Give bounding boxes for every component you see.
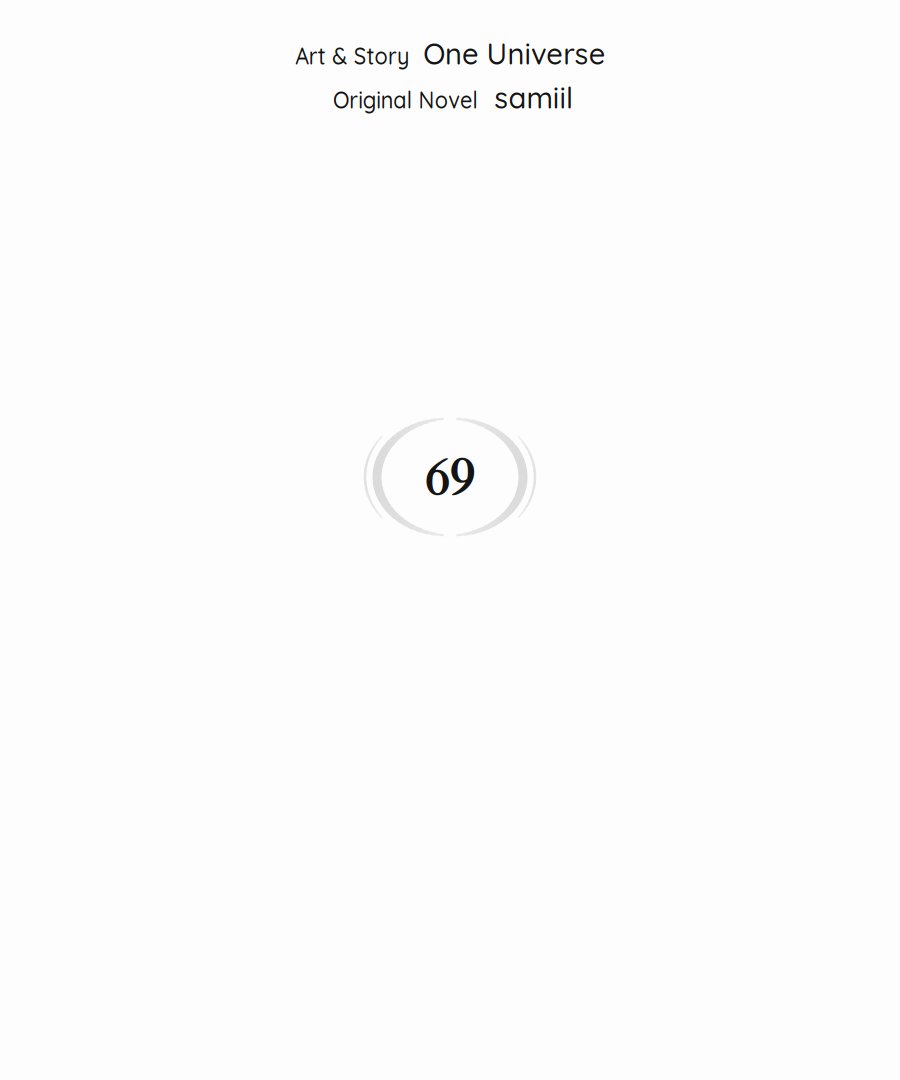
staticText: samiil xyxy=(492,78,575,116)
staticText: One Universe xyxy=(418,34,611,72)
staticText: Original Novel xyxy=(325,84,486,114)
staticText: 69 xyxy=(423,442,477,514)
staticText: Art & Story xyxy=(289,40,416,70)
